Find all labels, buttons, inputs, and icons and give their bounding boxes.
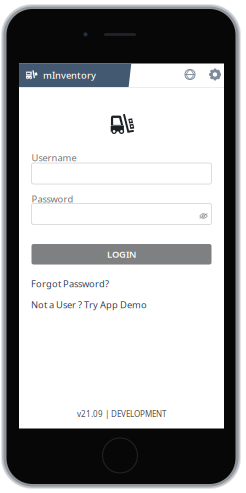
button[interactable]: Show password bbox=[195, 208, 211, 224]
staticText: v21.09 | DEVELOPMENT bbox=[77, 409, 166, 419]
staticText: Username bbox=[31, 151, 76, 164]
button[interactable]: Settings bbox=[205, 64, 225, 84]
button[interactable]: Forgot Password? bbox=[31, 277, 109, 290]
staticText: Password bbox=[31, 193, 73, 205]
button[interactable]: LOGIN bbox=[31, 244, 211, 264]
staticText: Not a User ? Try App Demo bbox=[31, 298, 147, 311]
staticText: LOGIN bbox=[107, 248, 136, 260]
staticText: Forgot Password? bbox=[31, 277, 109, 290]
button[interactable]: Username field bbox=[31, 163, 211, 184]
button[interactable]: Not a User ? Try App Demo bbox=[31, 298, 147, 311]
staticText: mInventory bbox=[43, 69, 96, 81]
button[interactable]: Change site bbox=[180, 64, 200, 84]
button[interactable]: mInventory bbox=[19, 63, 114, 87]
button[interactable]: Password field bbox=[31, 203, 211, 224]
